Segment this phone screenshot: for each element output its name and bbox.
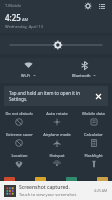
staticText: Location	[11, 153, 28, 158]
button[interactable]: Edit tiles	[96, 0, 107, 11]
button[interactable]: Do not disturb	[0, 109, 38, 128]
staticText: Airplane mode	[43, 132, 71, 137]
staticText: Calculator	[84, 132, 103, 137]
button[interactable]: Tap and hold an item to open it in Setti…	[4, 86, 108, 106]
button[interactable]	[97, 177, 108, 181]
button[interactable]: Settings	[82, 0, 93, 11]
staticText: Wednesday, April 13	[5, 24, 44, 29]
staticText: AM	[22, 17, 29, 22]
button[interactable]: Location	[0, 151, 38, 170]
button[interactable]: Brightness	[0, 36, 112, 54]
button[interactable]: Dismiss	[94, 92, 103, 101]
staticText: Touch to view your screenshot.	[19, 192, 77, 197]
staticText: Flashlight	[84, 153, 103, 158]
staticText: Bluetooth	[72, 73, 91, 78]
button[interactable]: Flashlight	[75, 151, 112, 170]
staticText: Mobile data	[82, 111, 105, 116]
button[interactable]: Screenshot captured.	[0, 181, 112, 200]
staticText: 4:25	[5, 12, 21, 23]
button[interactable]: Auto rotate	[38, 109, 75, 128]
button[interactable]: Airplane mode	[38, 130, 75, 149]
button[interactable]: Bluetooth	[56, 58, 112, 81]
staticText: Wi-Fi	[21, 73, 31, 78]
staticText: T-Mobile	[5, 3, 22, 8]
staticText: Extreme saver	[6, 132, 33, 137]
button[interactable]: Mobile data	[75, 109, 112, 128]
staticText: Auto rotate	[46, 111, 68, 116]
button[interactable]: 4:25	[5, 12, 112, 29]
button[interactable]	[66, 177, 77, 181]
button[interactable]	[35, 177, 46, 181]
button[interactable]: Hotspot	[38, 151, 75, 170]
button[interactable]: Wi-Fi	[0, 58, 56, 81]
button[interactable]: Calculator	[75, 130, 112, 149]
staticText: Hotspot	[49, 153, 65, 158]
button[interactable]	[4, 177, 15, 181]
staticText: Do not disturb	[5, 111, 33, 116]
button[interactable]: Extreme saver	[0, 130, 38, 149]
staticText: Screenshot captured.	[19, 184, 70, 191]
staticText: 4:25 AM	[94, 188, 108, 193]
staticText: Tap and hold an item to open it in Setti…	[9, 90, 91, 102]
